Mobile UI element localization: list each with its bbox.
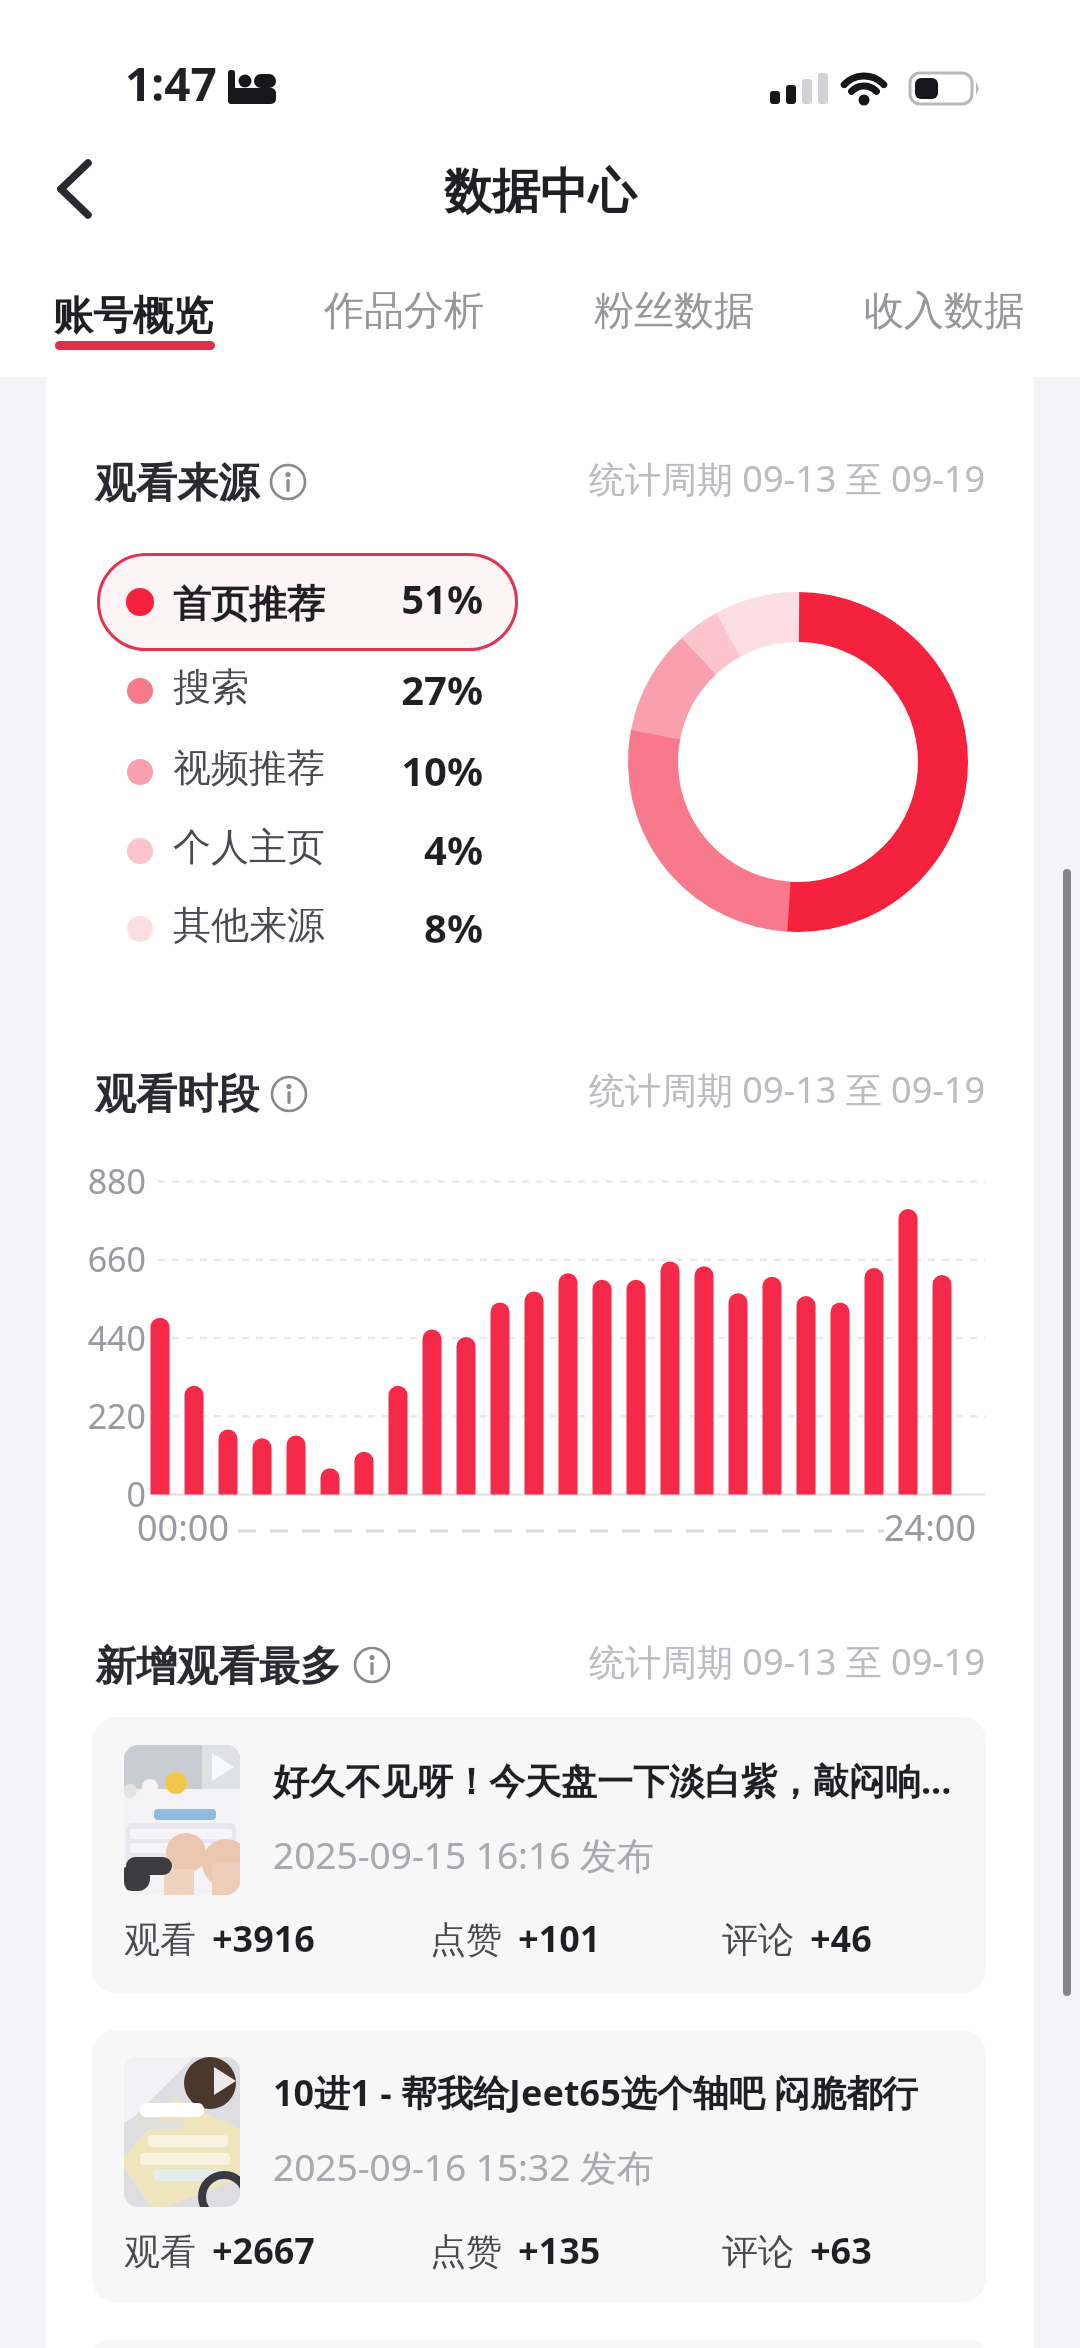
- button[interactable]: [97, 553, 518, 651]
- staticText: 2025-09-16 15:32 发布: [273, 2141, 654, 2192]
- staticText: 观看时段: [95, 1069, 259, 1121]
- staticText: 10进1 - 帮我给Jeet65选个轴吧 闷脆都行: [273, 2068, 919, 2117]
- button[interactable]: [594, 280, 756, 360]
- staticText: 4%: [424, 822, 483, 876]
- staticText: 观看: [124, 2229, 196, 2274]
- staticText: 10%: [401, 743, 483, 797]
- staticText: +46: [810, 1914, 872, 1963]
- staticText: +135: [518, 2226, 601, 2275]
- staticText: 27%: [401, 662, 483, 716]
- staticText: 观看来源: [95, 458, 259, 510]
- staticText: +101: [518, 1914, 601, 1963]
- staticText: 观看: [124, 1917, 196, 1962]
- staticText: 好久不见呀！今天盘一下淡白紫，敲闷响...: [273, 1756, 952, 1805]
- staticText: 2025-09-15 16:16 发布: [273, 1829, 654, 1880]
- staticText: 440: [87, 1315, 146, 1361]
- staticText: 作品分析: [324, 285, 484, 335]
- staticText: +3916: [212, 1914, 315, 1963]
- button[interactable]: [864, 280, 1026, 360]
- staticText: 评论: [722, 1917, 794, 1962]
- staticText: 新增观看最多: [95, 1641, 341, 1693]
- button[interactable]: [53, 280, 215, 360]
- button[interactable]: [92, 1717, 986, 1993]
- staticText: 评论: [722, 2229, 794, 2274]
- staticText: 统计周期 09-13 至 09-19: [588, 454, 985, 503]
- staticText: 统计周期 09-13 至 09-19: [588, 1637, 985, 1686]
- staticText: 220: [87, 1393, 146, 1439]
- staticText: 点赞: [430, 1917, 502, 1962]
- staticText: 660: [87, 1236, 146, 1282]
- staticText: 880: [87, 1158, 146, 1204]
- button[interactable]: [40, 148, 120, 228]
- staticText: 搜索: [173, 663, 249, 711]
- staticText: 点赞: [430, 2229, 502, 2274]
- button[interactable]: [92, 2030, 986, 2302]
- staticText: 1:47: [125, 52, 217, 115]
- staticText: 8%: [424, 900, 483, 954]
- staticText: 首页推荐: [173, 580, 325, 628]
- staticText: 个人主页: [173, 823, 325, 871]
- staticText: +63: [810, 2226, 872, 2275]
- staticText: 粉丝数据: [594, 285, 754, 335]
- staticText: 统计周期 09-13 至 09-19: [588, 1065, 985, 1114]
- staticText: 24:00: [883, 1503, 976, 1552]
- staticText: 0: [126, 1471, 146, 1517]
- staticText: 账号概览: [53, 290, 213, 340]
- staticText: 数据中心: [444, 162, 636, 222]
- staticText: 51%: [401, 571, 483, 625]
- staticText: 00:00: [137, 1503, 230, 1552]
- staticText: +2667: [212, 2226, 315, 2275]
- staticText: 收入数据: [864, 285, 1024, 335]
- staticText: 视频推荐: [173, 744, 325, 792]
- button[interactable]: [324, 280, 486, 360]
- staticText: 其他来源: [173, 901, 325, 949]
